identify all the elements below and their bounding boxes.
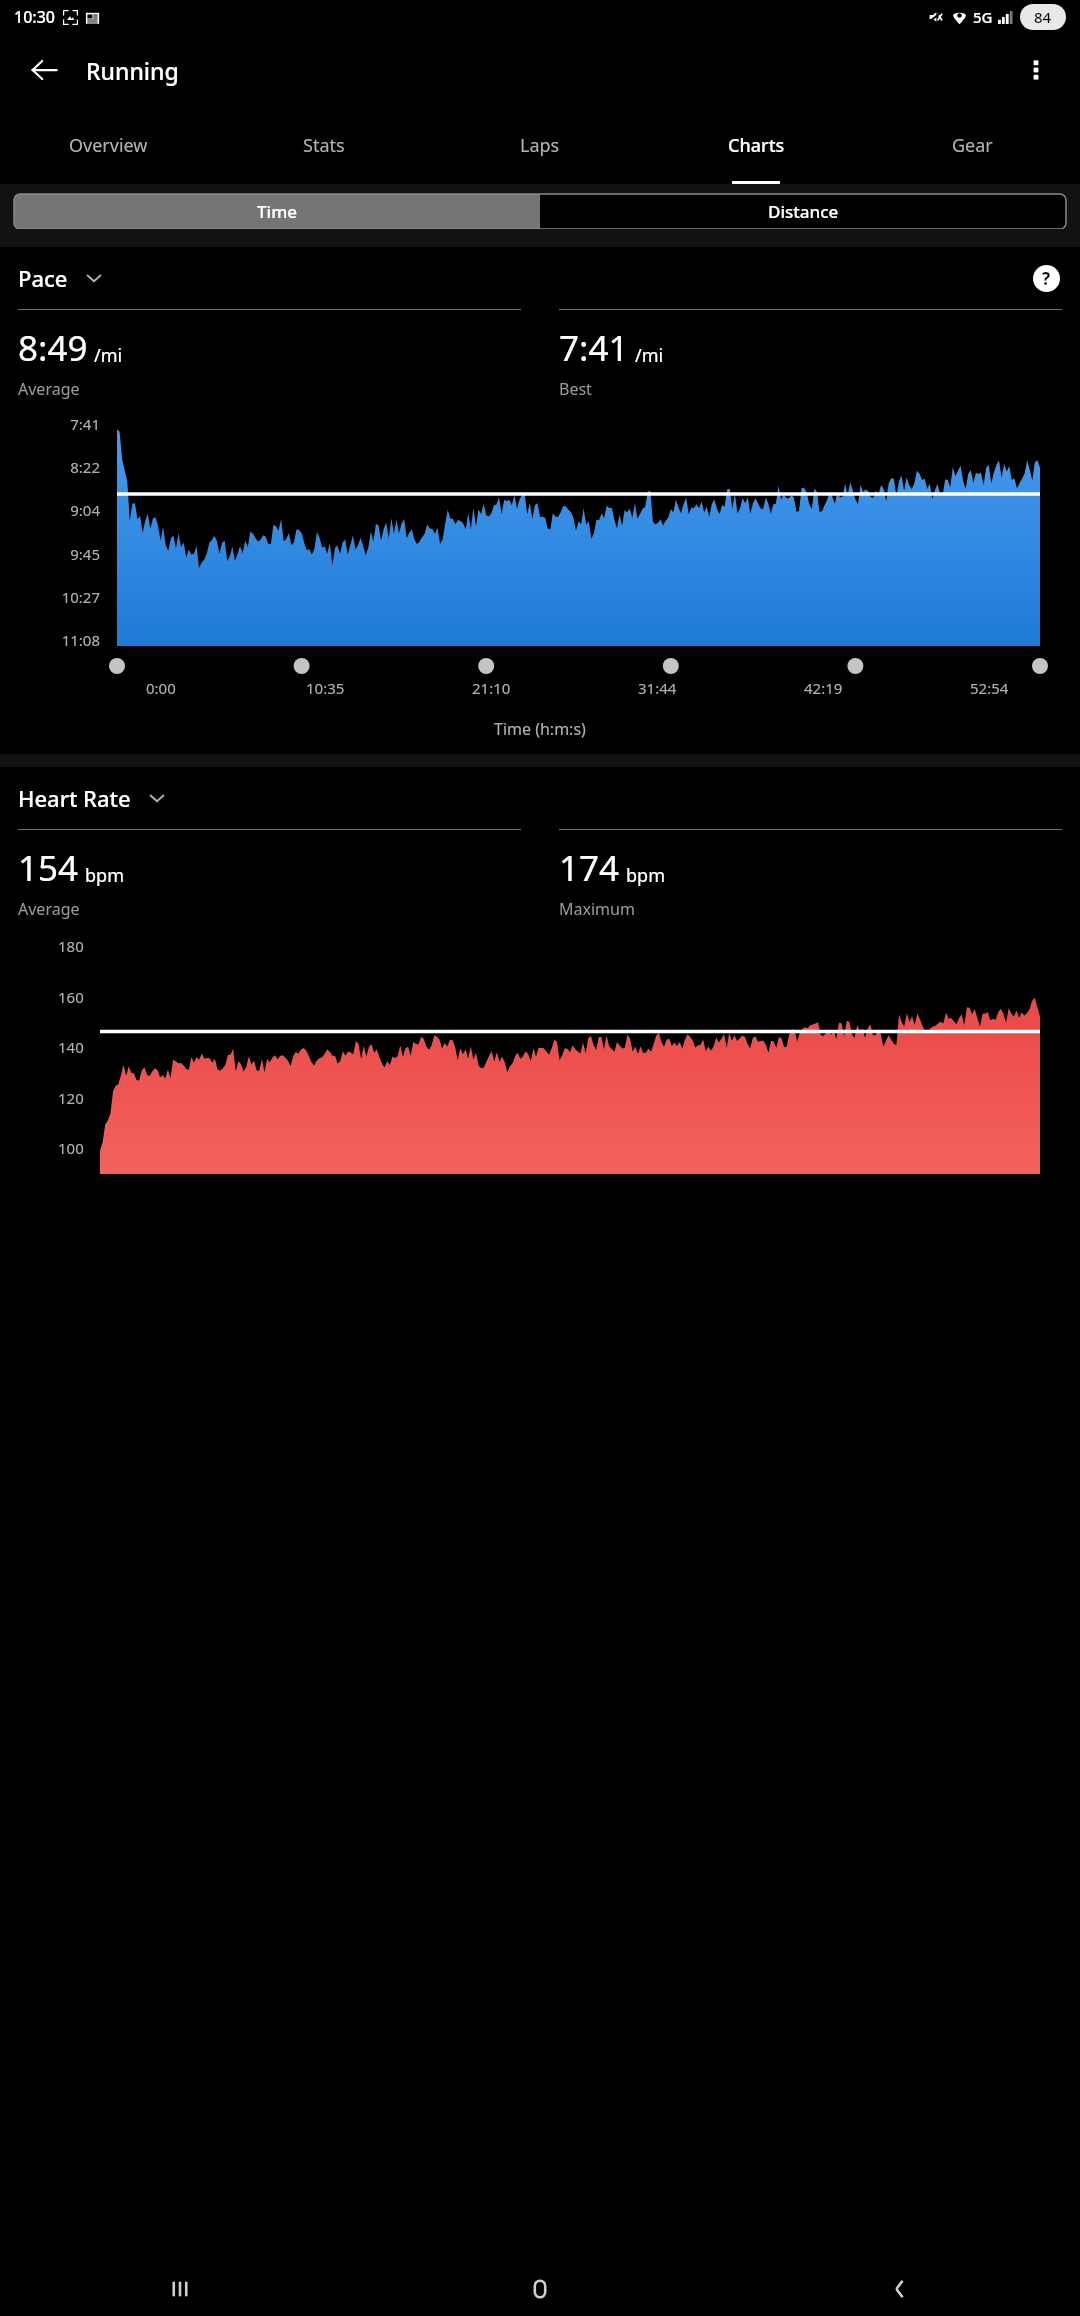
button[interactable]: More options	[1012, 46, 1060, 94]
staticText: 8:49	[18, 324, 88, 372]
staticText: /mi	[635, 343, 664, 368]
staticText: Gear	[952, 133, 993, 158]
staticText: Charts	[728, 133, 785, 158]
staticText: Average	[18, 898, 80, 920]
button[interactable]: Pace	[18, 263, 104, 293]
staticText: 31:44	[638, 678, 677, 698]
staticText: Best	[559, 378, 592, 400]
button[interactable]: Help	[1026, 258, 1066, 298]
staticText: Overview	[69, 133, 148, 158]
button[interactable]: Stats	[216, 106, 432, 184]
staticText: 11:08	[61, 630, 100, 650]
staticText: Laps	[520, 133, 560, 158]
button[interactable]: Charts	[648, 106, 864, 184]
button[interactable]: Recent apps	[0, 2262, 360, 2316]
staticText: 7:41	[559, 324, 629, 372]
staticText: 100	[58, 1138, 84, 1158]
button[interactable]: Overview	[0, 106, 216, 184]
staticText: ?	[1042, 267, 1051, 290]
staticText: 160	[58, 987, 84, 1007]
staticText: Pace	[18, 263, 68, 293]
staticText: 5G	[973, 7, 993, 27]
staticText: Distance	[768, 200, 839, 223]
staticText: 120	[58, 1088, 84, 1108]
staticText: 154	[18, 844, 79, 892]
button[interactable]: Heart Rate	[18, 783, 167, 813]
staticText: Time	[257, 200, 298, 223]
button[interactable]: Back	[720, 2262, 1080, 2316]
staticText: 174	[559, 844, 620, 892]
button[interactable]: Gear	[864, 106, 1080, 184]
staticText: 7:41	[70, 414, 100, 434]
staticText: 10:27	[61, 587, 100, 607]
staticText: 180	[58, 936, 84, 956]
button[interactable]: Back	[20, 46, 68, 94]
staticText: Maximum	[559, 898, 635, 920]
staticText: 0:00	[146, 678, 176, 698]
staticText: 140	[58, 1037, 84, 1057]
staticText: 10:35	[306, 678, 345, 698]
staticText: 10:30	[14, 6, 55, 28]
staticText: 8:22	[70, 457, 100, 477]
staticText: 84	[1034, 7, 1052, 27]
staticText: bpm	[85, 863, 124, 888]
button[interactable]: Laps	[432, 106, 648, 184]
staticText: Stats	[303, 133, 345, 158]
button[interactable]: Distance	[540, 194, 1066, 229]
staticText: 9:45	[70, 544, 100, 564]
staticText: 52:54	[970, 678, 1009, 698]
staticText: 21:10	[472, 678, 511, 698]
staticText: Running	[86, 55, 179, 86]
staticText: 9:04	[70, 500, 100, 520]
button[interactable]: Home	[360, 2262, 720, 2316]
staticText: Average	[18, 378, 80, 400]
staticText: bpm	[626, 863, 665, 888]
staticText: /mi	[94, 343, 123, 368]
button[interactable]: Time	[14, 194, 540, 229]
staticText: Time (h:m:s)	[494, 718, 586, 740]
staticText: 42:19	[804, 678, 843, 698]
staticText: Heart Rate	[18, 783, 131, 813]
